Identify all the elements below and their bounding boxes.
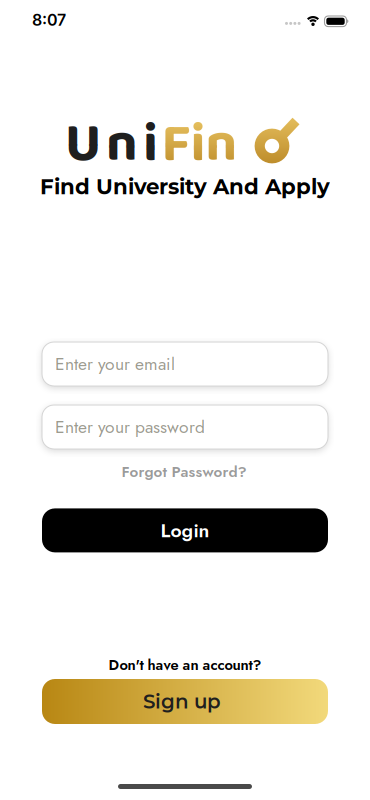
staticText: Don't have an account? [108, 654, 261, 675]
staticText: U n i [65, 100, 158, 188]
staticText: Forgot Password? [121, 461, 246, 483]
button[interactable]: Login [42, 508, 328, 552]
button[interactable]: Sign up [42, 679, 328, 724]
staticText: Enter your email [55, 351, 175, 376]
staticText: Find University And Apply [40, 174, 330, 200]
button[interactable]: Forgot Password? [121, 461, 246, 483]
staticText: Login [160, 516, 209, 544]
secureTextField[interactable]: Enter your password [55, 414, 318, 439]
textField[interactable]: Enter your email [55, 351, 318, 376]
staticText: Sign up [143, 689, 221, 713]
staticText: Enter your password [55, 414, 205, 439]
staticText: 8:07 [32, 10, 66, 30]
